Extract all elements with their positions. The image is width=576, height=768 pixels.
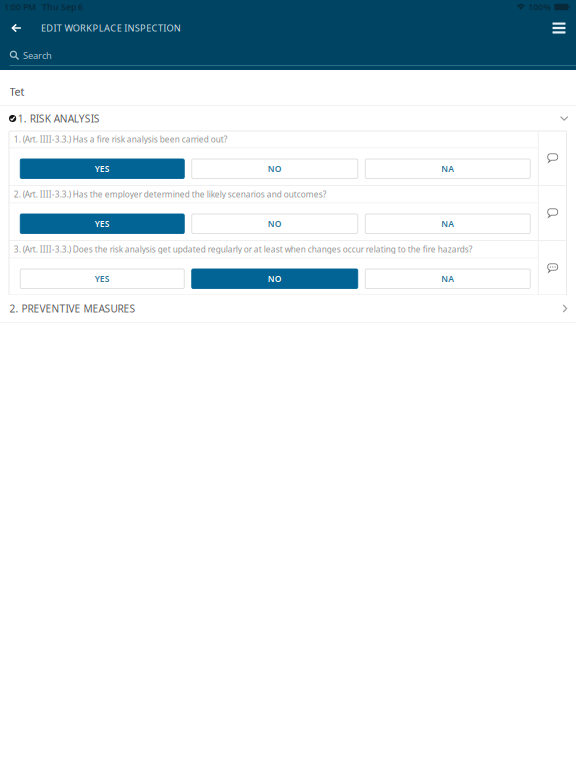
- staticText: 100%: [528, 1, 551, 13]
- staticText: NO: [268, 273, 282, 284]
- staticText: YES: [95, 273, 110, 284]
- button[interactable]: NO: [192, 214, 358, 233]
- button[interactable]: NA: [365, 269, 530, 288]
- button[interactable]: 1. RISK ANALYSIS: [0, 106, 576, 131]
- staticText: 3. (Art. IIII-3.3.) Does the risk analys…: [14, 244, 473, 255]
- button[interactable]: 2. PREVENTIVE MEASURES: [0, 295, 576, 322]
- button[interactable]: Comment: [539, 241, 567, 295]
- staticText: 1. (Art. IIII-3.3.) Has a fire risk anal…: [14, 134, 228, 145]
- button[interactable]: NA: [365, 214, 530, 233]
- staticText: NA: [441, 163, 454, 174]
- staticText: YES: [95, 163, 110, 174]
- staticText: 2. PREVENTIVE MEASURES: [9, 302, 135, 315]
- staticText: Search: [23, 49, 52, 62]
- staticText: EDIT WORKPLACE INSPECTION: [41, 22, 181, 34]
- staticText: Tet: [10, 84, 25, 99]
- staticText: NO: [268, 218, 282, 229]
- staticText: 2. (Art. IIII-3.3.) Has the employer det…: [14, 189, 327, 200]
- staticText: NO: [268, 163, 282, 174]
- button[interactable]: YES: [20, 159, 184, 178]
- staticText: Thu Sep 6: [42, 1, 83, 13]
- button[interactable]: NO: [192, 159, 358, 178]
- button[interactable]: YES: [20, 269, 184, 288]
- staticText: YES: [95, 218, 110, 229]
- button[interactable]: Comment: [539, 186, 567, 240]
- staticText: 1. RISK ANALYSIS: [18, 112, 100, 125]
- staticText: 1:00 PM: [4, 1, 36, 13]
- button[interactable]: YES: [20, 214, 184, 233]
- button[interactable]: NA: [365, 159, 530, 178]
- button[interactable]: NO: [192, 269, 358, 288]
- button[interactable]: Back: [0, 14, 33, 42]
- button[interactable]: Menu: [542, 14, 576, 42]
- staticText: NA: [441, 273, 454, 284]
- staticText: NA: [441, 218, 454, 229]
- button[interactable]: Comment: [539, 131, 567, 185]
- button[interactable]: Search: [0, 48, 576, 62]
